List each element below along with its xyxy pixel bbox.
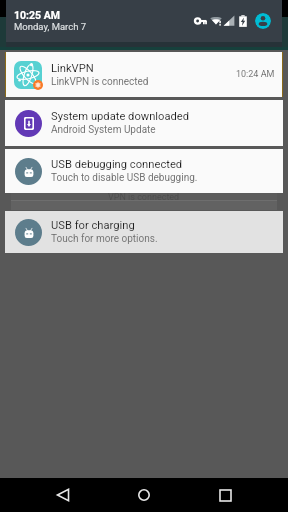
staticText: LinkVPN is connected [51, 76, 149, 88]
staticText: Android System Update [51, 124, 156, 136]
staticText: USB debugging connected [51, 158, 183, 171]
staticText: Touch to disable USB debugging. [51, 172, 198, 184]
staticText: Monday, March 7 [14, 21, 87, 32]
staticText: 10:25 AM [14, 9, 60, 21]
button[interactable]: System update downloaded [5, 100, 283, 146]
staticText: USB for charging [51, 219, 135, 232]
staticText: VPN is connected [108, 192, 180, 203]
staticText: 10:24 AM [236, 69, 275, 80]
button[interactable]: USB for charging [5, 211, 283, 253]
button[interactable]: Recent apps [198, 478, 252, 512]
button[interactable]: LinkVPN [5, 52, 283, 97]
button[interactable]: Back [36, 478, 90, 512]
button[interactable]: Home [117, 478, 171, 512]
staticText: System update downloaded [51, 110, 190, 123]
staticText: Touch for more options. [51, 233, 158, 245]
button[interactable]: USB debugging connected [5, 149, 283, 193]
staticText: LinkVPN [51, 62, 94, 75]
button[interactable]: User profile [255, 13, 271, 29]
